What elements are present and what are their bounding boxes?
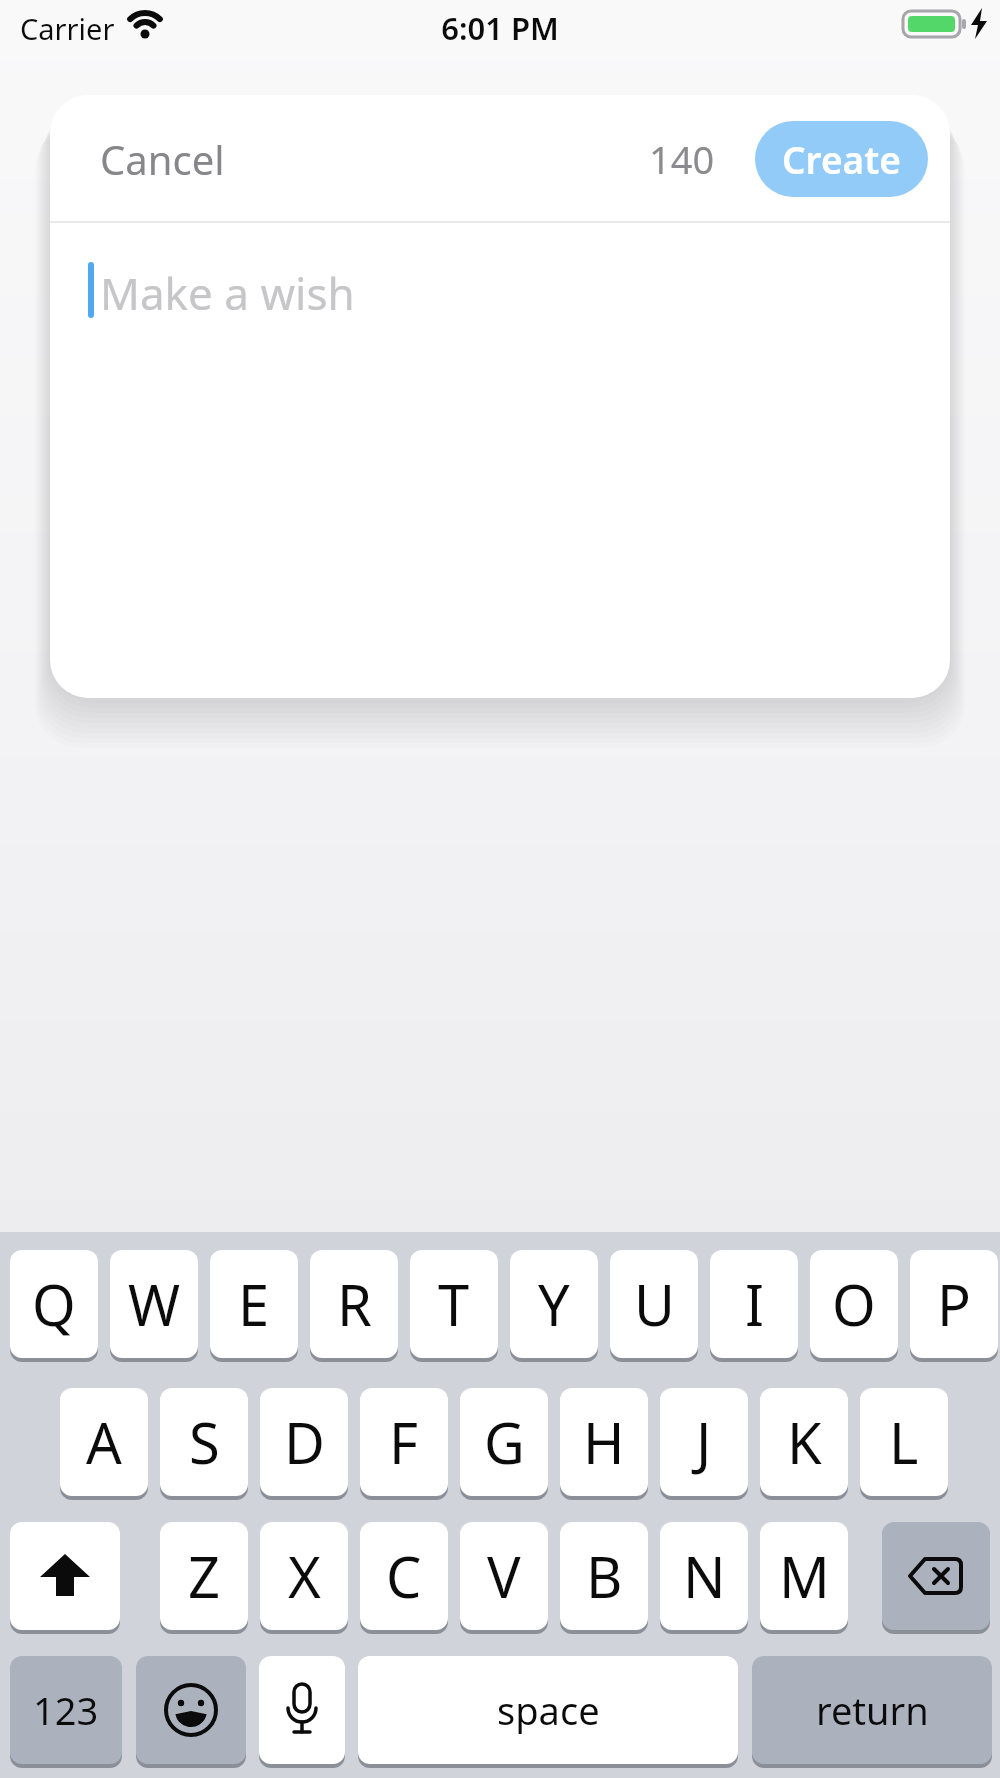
staticText: A [86, 1404, 122, 1480]
button[interactable]: Y [510, 1250, 598, 1358]
button[interactable]: K [760, 1388, 848, 1496]
staticText: I [745, 1266, 764, 1342]
button[interactable]: J [660, 1388, 748, 1496]
staticText: W [128, 1266, 181, 1342]
button[interactable]: F [360, 1388, 448, 1496]
staticText: R [337, 1266, 372, 1342]
staticText: D [284, 1404, 325, 1480]
staticText: Cancel [100, 132, 225, 186]
button[interactable]: O [810, 1250, 898, 1358]
staticText: U [634, 1266, 675, 1342]
staticText: K [787, 1404, 822, 1480]
button[interactable]: C [360, 1522, 448, 1630]
button[interactable]: M [760, 1522, 848, 1630]
button[interactable] [10, 1522, 120, 1630]
staticText: F [389, 1404, 419, 1480]
staticText: Make a wish [100, 263, 355, 323]
staticText: Z [188, 1538, 221, 1614]
button[interactable] [136, 1656, 246, 1764]
button[interactable]: return [752, 1656, 992, 1764]
button[interactable]: Cancel [100, 132, 225, 186]
staticText: space [497, 1684, 600, 1736]
staticText: V [487, 1538, 521, 1614]
staticText: L [889, 1404, 919, 1480]
staticText: X [288, 1538, 321, 1614]
staticText: Y [538, 1266, 570, 1342]
staticText: G [484, 1404, 525, 1480]
staticText: H [583, 1404, 625, 1480]
button[interactable]: P [910, 1250, 998, 1358]
button[interactable]: I [710, 1250, 798, 1358]
staticText: 123 [33, 1684, 99, 1736]
button[interactable]: Z [160, 1522, 248, 1630]
staticText: S [189, 1404, 220, 1480]
button[interactable] [882, 1522, 990, 1630]
button[interactable]: A [60, 1388, 148, 1496]
button[interactable]: D [260, 1388, 348, 1496]
button[interactable]: E [210, 1250, 298, 1358]
button[interactable]: U [610, 1250, 698, 1358]
button[interactable]: B [560, 1522, 648, 1630]
button[interactable]: T [410, 1250, 498, 1358]
staticText: O [832, 1266, 876, 1342]
button[interactable]: S [160, 1388, 248, 1496]
staticText: 6:01 PM [0, 7, 1000, 49]
button[interactable]: N [660, 1522, 748, 1630]
button[interactable]: Create [755, 121, 928, 197]
button[interactable]: Q [10, 1250, 98, 1358]
button[interactable] [259, 1656, 345, 1764]
staticText: Carrier [20, 9, 115, 48]
button[interactable]: L [860, 1388, 948, 1496]
button[interactable]: space [358, 1656, 738, 1764]
staticText: Create [782, 134, 901, 184]
staticText: M [779, 1538, 830, 1614]
button[interactable]: X [260, 1522, 348, 1630]
staticText: P [937, 1266, 971, 1342]
button[interactable]: 123 [10, 1656, 122, 1764]
staticText: B [586, 1538, 623, 1614]
button[interactable]: H [560, 1388, 648, 1496]
staticText: Q [32, 1266, 76, 1342]
staticText: 140 [649, 133, 715, 185]
staticText: T [438, 1266, 470, 1342]
button[interactable]: R [310, 1250, 398, 1358]
button[interactable]: W [110, 1250, 198, 1358]
staticText: C [386, 1538, 422, 1614]
staticText: N [683, 1538, 726, 1614]
button[interactable]: G [460, 1388, 548, 1496]
staticText: J [696, 1404, 712, 1480]
button[interactable]: V [460, 1522, 548, 1630]
staticText: E [238, 1266, 270, 1342]
staticText: return [816, 1684, 929, 1736]
